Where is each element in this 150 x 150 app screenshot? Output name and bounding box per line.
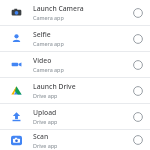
button[interactable]: Select Scan xyxy=(126,130,150,150)
staticText: Launch Drive xyxy=(33,82,76,91)
button[interactable]: Scan xyxy=(0,130,150,150)
button[interactable]: Select Selfie xyxy=(126,26,150,51)
button[interactable]: Video xyxy=(0,52,150,77)
staticText: Video xyxy=(33,56,52,65)
button[interactable]: Select Launch Camera xyxy=(126,0,150,25)
button[interactable]: Selfie xyxy=(0,26,150,51)
button[interactable]: Upload xyxy=(0,104,150,129)
button[interactable]: Launch Drive xyxy=(0,78,150,103)
button[interactable]: Select Video xyxy=(126,52,150,77)
staticText: Scan xyxy=(33,132,49,141)
staticText: Drive app xyxy=(33,92,58,99)
button[interactable]: Select Upload xyxy=(126,104,150,129)
staticText: Camera app xyxy=(33,66,64,73)
staticText: Camera app xyxy=(33,14,64,21)
staticText: Drive app xyxy=(33,142,58,149)
staticText: Launch Camera xyxy=(33,4,84,13)
button[interactable]: Launch Camera xyxy=(0,0,150,25)
staticText: Selfie xyxy=(33,30,51,39)
staticText: Drive app xyxy=(33,118,58,125)
button[interactable]: Select Launch Drive xyxy=(126,78,150,103)
staticText: Camera app xyxy=(33,40,64,47)
staticText: Upload xyxy=(33,108,57,117)
